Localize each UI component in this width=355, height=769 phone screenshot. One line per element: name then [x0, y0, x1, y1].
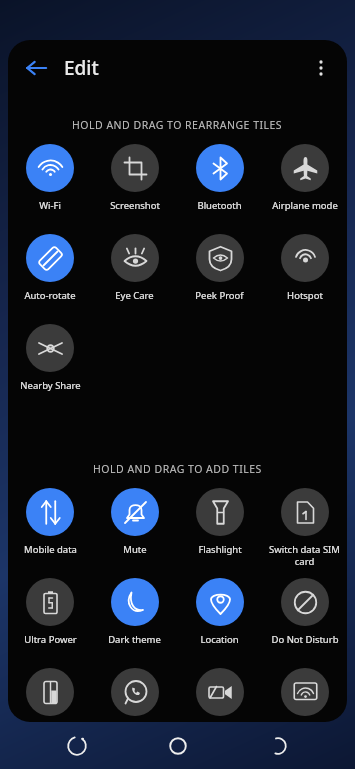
button[interactable]: Auto-rotate — [8, 228, 92, 318]
button[interactable]: videooff — [177, 662, 262, 722]
button[interactable]: Nearby Share — [8, 318, 92, 408]
staticText: Eye Care — [115, 289, 154, 302]
button[interactable]: Airplane mode — [262, 138, 347, 228]
staticText: Bluetooth — [197, 199, 242, 212]
staticText: Edit — [64, 55, 99, 81]
staticText: Hotspot — [287, 289, 323, 302]
button[interactable]: Back — [255, 723, 301, 769]
button[interactable]: Do Not Disturb — [262, 572, 347, 662]
button[interactable]: Mute — [92, 482, 177, 572]
staticText: Auto-rotate — [24, 289, 76, 302]
button[interactable]: Peek Proof — [177, 228, 262, 318]
button[interactable]: Recents — [54, 723, 100, 769]
button[interactable]: split — [8, 662, 92, 722]
button[interactable]: Bluetooth — [177, 138, 262, 228]
staticText: HOLD AND DRAG TO REARRANGE TILES — [72, 118, 283, 132]
staticText: Wi-Fi — [39, 199, 61, 212]
button[interactable]: Dark theme — [92, 572, 177, 662]
button[interactable]: Location — [177, 572, 262, 662]
staticText: Nearby Share — [20, 379, 81, 392]
staticText: Switch data SIM card — [269, 543, 340, 567]
button[interactable]: Screenshot — [92, 138, 177, 228]
button[interactable]: Flashlight — [177, 482, 262, 572]
button[interactable]: Ultra Power — [8, 572, 92, 662]
button[interactable]: Back — [16, 48, 56, 88]
staticText: Mute — [123, 543, 147, 556]
button[interactable]: Mobile data — [8, 482, 92, 572]
button[interactable]: Hotspot — [262, 228, 347, 318]
staticText: Flashlight — [198, 543, 242, 556]
button[interactable]: whatsapp — [92, 662, 177, 722]
button[interactable]: Eye Care — [92, 228, 177, 318]
staticText: Dark theme — [108, 633, 161, 646]
staticText: Ultra Power — [24, 633, 77, 646]
staticText: Do Not Disturb — [271, 633, 339, 646]
staticText: HOLD AND DRAG TO ADD TILES — [93, 462, 262, 476]
button[interactable]: Wi-Fi — [8, 138, 92, 228]
staticText: Screenshot — [110, 199, 160, 212]
button[interactable]: cast — [262, 662, 347, 722]
button[interactable]: Home — [155, 723, 201, 769]
button[interactable]: More options — [301, 48, 341, 88]
staticText: Mobile data — [24, 543, 77, 556]
staticText: Peek Proof — [195, 289, 244, 302]
staticText: Location — [200, 633, 239, 646]
staticText: Airplane mode — [272, 199, 338, 212]
button[interactable]: Switch data SIM card — [262, 482, 347, 572]
